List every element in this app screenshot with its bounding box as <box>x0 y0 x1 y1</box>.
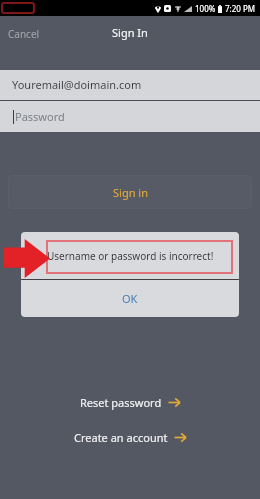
button[interactable]: Create an account <box>70 427 190 448</box>
button[interactable]: Youremail@doimain.com <box>0 70 260 100</box>
staticText: Reset password <box>80 395 162 410</box>
button[interactable]: Reset password <box>76 392 184 413</box>
button[interactable]: OK <box>21 280 239 317</box>
staticText: 100% <box>195 3 216 14</box>
staticText: Sign In <box>112 25 148 40</box>
staticText: Password <box>15 109 65 124</box>
staticText: Cancel <box>8 27 40 41</box>
staticText: Username or password is incorrect! <box>47 249 214 263</box>
staticText: OK <box>122 291 138 306</box>
staticText: Youremail@doimain.com <box>12 77 142 92</box>
staticText: Sign in <box>113 185 148 200</box>
staticText: 7:20 PM <box>225 3 256 14</box>
button[interactable]: Password <box>0 101 260 132</box>
button[interactable]: Sign in <box>8 175 252 209</box>
button[interactable]: Cancel <box>0 20 48 48</box>
staticText: Create an account <box>74 430 168 445</box>
